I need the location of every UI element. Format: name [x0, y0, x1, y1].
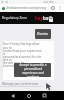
button[interactable]: hey: [35, 15, 54, 21]
staticText: Regulatory Zone: [2, 16, 28, 20]
staticText: Manage your preferences: [2, 82, 39, 86]
staticText: Dismiss: [37, 32, 49, 36]
button[interactable]: More options: [57, 4, 62, 12]
staticText: Accept to provide a personalised experie…: [19, 63, 47, 77]
staticText: childcarecenter.com/privacy: [6, 6, 47, 10]
button[interactable]: Home: [25, 91, 32, 100]
button[interactable]: Dismiss: [35, 29, 51, 39]
staticText: Your Privacy Settings allow you to contr…: [3, 42, 43, 68]
button[interactable]: Back: [9, 91, 16, 100]
button[interactable]: Reload page: [50, 4, 55, 12]
staticText: hey: [35, 15, 43, 21]
button[interactable]: Accept to provide a personalised experie…: [14, 63, 51, 77]
staticText: bath: [43, 15, 54, 21]
button[interactable]: Recent apps: [41, 91, 48, 100]
